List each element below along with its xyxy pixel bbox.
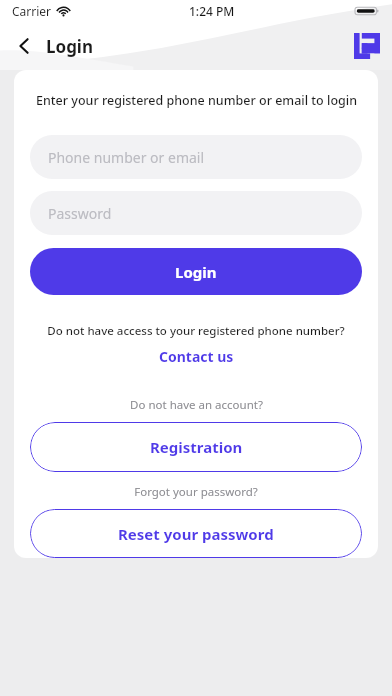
button[interactable]: Logo [353,32,381,60]
staticText: Forgot your password? [134,484,258,500]
button[interactable]: Login [30,248,362,295]
staticText: Contact us [159,347,234,366]
staticText: Password [48,204,112,223]
button[interactable]: Phone number or email [30,135,362,179]
button[interactable]: Reset your password [30,509,362,558]
staticText: 1:24 PM [189,3,235,19]
staticText: Login [175,262,217,282]
staticText: Enter your registered phone number or em… [36,92,357,109]
staticText: Phone number or email [48,148,205,167]
staticText: Carrier [12,3,52,19]
staticText: Login [46,35,94,58]
button[interactable]: Back [6,28,42,64]
staticText: Do not have access to your registered ph… [47,323,345,339]
staticText: Reset your password [118,524,274,544]
button[interactable]: Password [30,191,362,235]
button[interactable]: Registration [30,422,362,472]
button[interactable]: Contact us [153,345,240,368]
staticText: Registration [150,437,243,457]
staticText: Do not have an account? [130,397,263,413]
